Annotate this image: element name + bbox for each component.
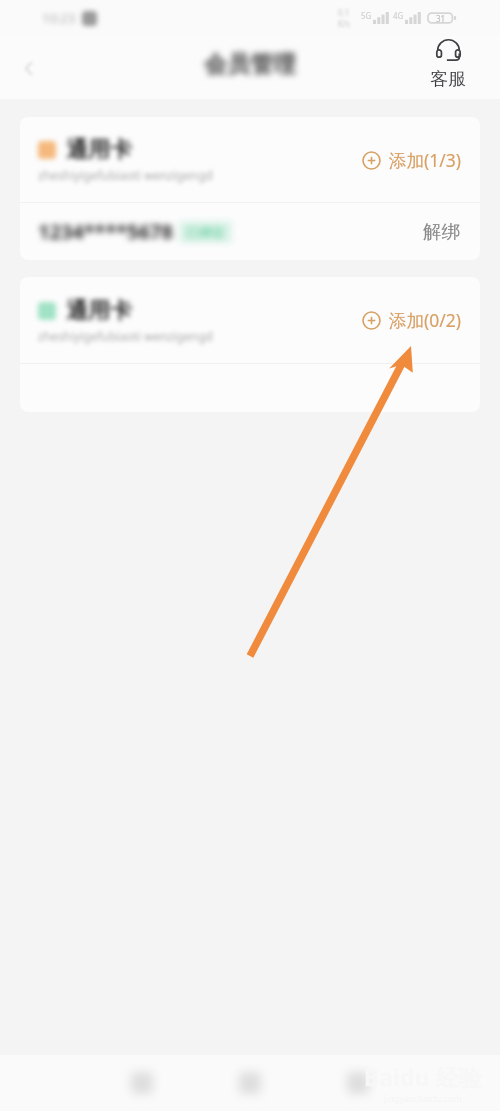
button[interactable]: Recents [96, 1055, 188, 1111]
staticText: 10:23 [42, 9, 76, 27]
staticText: 0.1 [338, 7, 350, 18]
staticText: 通用卡 [66, 136, 132, 164]
staticText: 31 [436, 13, 446, 24]
staticText: 5G [361, 10, 372, 21]
staticText: 已绑定 [186, 224, 225, 240]
button[interactable]: 客服 [424, 40, 472, 91]
staticText: K/s [338, 18, 350, 29]
staticText: 添加(1/3) [389, 148, 462, 172]
staticText: 添加(0/2) [389, 308, 462, 332]
button[interactable]: 通用卡 [20, 117, 480, 202]
staticText: 客服 [430, 68, 466, 91]
staticText: 1234****5678 [38, 218, 173, 245]
staticText: 会员管理 [204, 50, 296, 79]
button[interactable]: Back [12, 51, 46, 85]
button[interactable]: Home [204, 1055, 296, 1111]
staticText: 解绑 [423, 220, 460, 243]
staticText: zheshiyigefubiaoti wenzigengd [38, 167, 213, 183]
button[interactable]: Back [312, 1055, 404, 1111]
staticText: 4G [393, 10, 404, 21]
button[interactable]: 通用卡 [20, 277, 480, 363]
staticText: 通用卡 [66, 297, 132, 325]
staticText: zheshiyigefubiaoti wenzigengd [38, 328, 213, 344]
button[interactable]: 1234****5678 [20, 203, 480, 260]
